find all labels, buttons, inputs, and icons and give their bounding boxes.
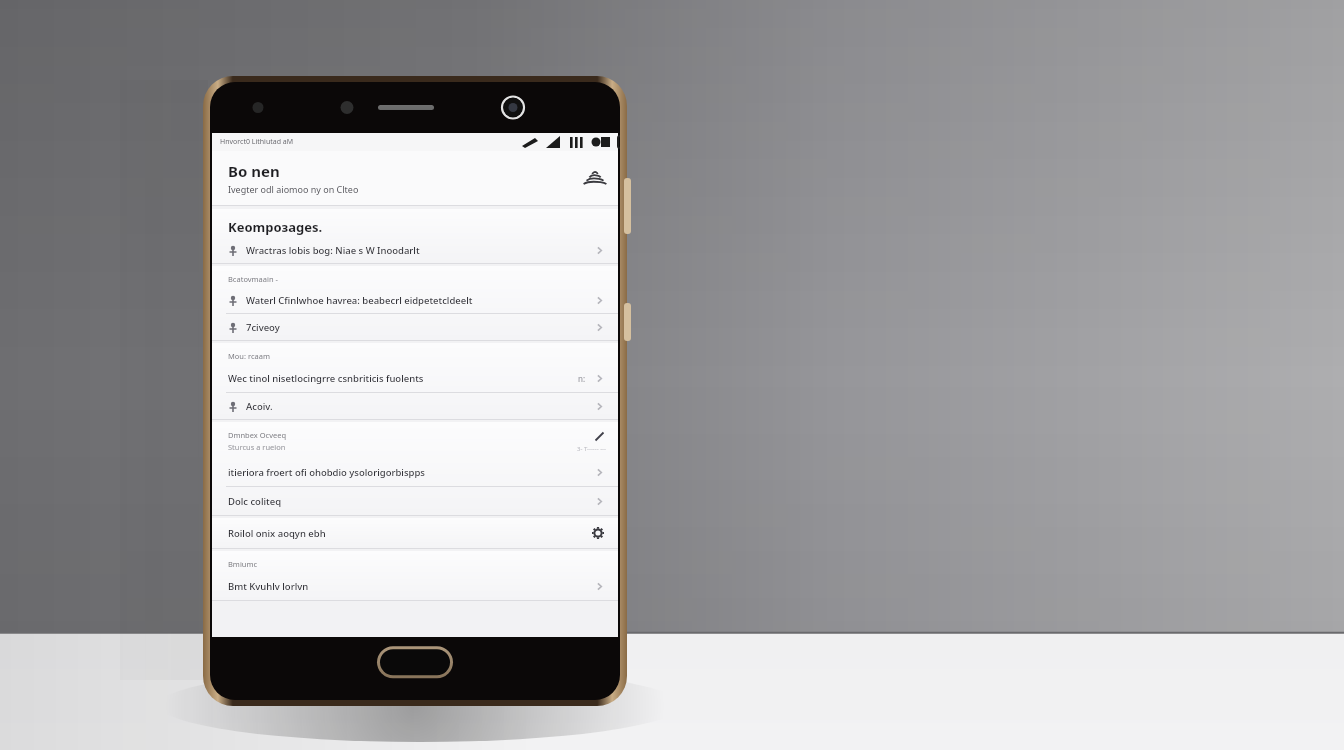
- staticText: Sturcus a rueion: [228, 442, 286, 452]
- button[interactable]: itieriora froert ofi ohobdio ysolorigorb…: [212, 458, 618, 486]
- staticText: Acoiv.: [246, 400, 592, 413]
- staticText: Hnvorct0 Lithiutad aM: [220, 137, 294, 147]
- button[interactable]: Bmt Kvuhlv lorlvn: [212, 572, 618, 600]
- button[interactable]: Roilol onix aoqyn ebh: [212, 518, 618, 548]
- button[interactable]: Wec tinol nisetlocingrre csnbriticis fuo…: [212, 364, 618, 392]
- other: Open: [592, 320, 606, 334]
- other: Open: [592, 494, 606, 508]
- button[interactable]: Dmnbex Ocveeq: [212, 422, 618, 458]
- staticText: Bmt Kvuhlv lorlvn: [228, 580, 592, 593]
- staticText: Bo nen: [228, 161, 280, 181]
- other: Open: [592, 293, 606, 307]
- staticText: Ivegter odl aiomoo ny on Clteo: [228, 183, 359, 195]
- button[interactable]: Bo nen: [212, 151, 618, 205]
- button[interactable]: Waterl Cfinlwhoe havrea: beabecrl eidpet…: [212, 287, 618, 313]
- other: Open: [592, 579, 606, 593]
- other: Open: [592, 465, 606, 479]
- button[interactable]: Edit: [592, 429, 606, 443]
- button[interactable]: Settings: [590, 525, 606, 541]
- staticText: Wec tinol nisetlocingrre csnbriticis fuo…: [228, 372, 578, 385]
- staticText: itieriora froert ofi ohobdio ysolorigorb…: [228, 466, 592, 479]
- staticText: Roilol onix aoqyn ebh: [228, 527, 590, 540]
- other: Open: [592, 399, 606, 413]
- button[interactable]: Dolc coliteq: [212, 487, 618, 515]
- staticText: 3- T------ ---: [577, 445, 606, 453]
- staticText: Dolc coliteq: [228, 495, 592, 508]
- staticText: Bcatovmaain -: [228, 274, 278, 284]
- staticText: Keompoзages.: [228, 218, 323, 236]
- staticText: Bmiumc: [228, 559, 258, 569]
- staticText: Waterl Cfinlwhoe havrea: beabecrl eidpet…: [246, 294, 592, 307]
- other: Open: [592, 371, 606, 385]
- staticText: n:: [578, 373, 586, 384]
- button[interactable]: Wractras lobis bog: Niae s W Inoodarlt: [212, 237, 618, 263]
- button[interactable]: 7civeoy: [212, 314, 618, 340]
- staticText: Dmnbex Ocveeq: [228, 430, 287, 440]
- button[interactable]: Network: [584, 167, 606, 189]
- staticText: 7civeoy: [246, 321, 592, 334]
- staticText: Mou: rcaam: [228, 351, 270, 361]
- staticText: Wractras lobis bog: Niae s W Inoodarlt: [246, 244, 592, 257]
- other: Open: [592, 243, 606, 257]
- button[interactable]: Acoiv.: [212, 393, 618, 419]
